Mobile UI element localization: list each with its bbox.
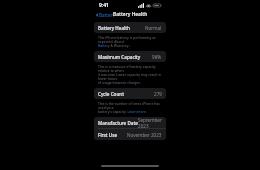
button[interactable]: Cycle Count: [94, 88, 166, 99]
staticText: November 2023: [127, 132, 162, 138]
staticText: 279: [154, 91, 162, 97]
staticText: September 2023: [138, 117, 162, 128]
staticText: This is the number of times iPhone has u…: [98, 101, 162, 114]
button[interactable]: Manufacture Date: [94, 117, 166, 128]
button[interactable]: Maximum Capacity: [94, 51, 166, 62]
staticText: Battery: [99, 12, 115, 17]
button[interactable]: Battery Health: [94, 22, 166, 33]
staticText: 9:41: [99, 2, 109, 9]
staticText: First Use: [98, 132, 118, 138]
button[interactable]: First Use: [94, 129, 166, 140]
staticText: This iPhone battery is performing as exp…: [98, 35, 162, 48]
staticText: Normal: [145, 25, 162, 31]
staticText: This is a measure of battery capacity re…: [98, 64, 162, 85]
staticText: Cycle Count: [98, 91, 124, 97]
staticText: Maximum Capacity: [98, 54, 141, 60]
staticText: 96%: [152, 54, 162, 60]
staticText: Battery Health: [98, 25, 130, 31]
button[interactable]: Back: [94, 10, 116, 19]
staticText: Battery Health: [113, 11, 148, 18]
staticText: Manufacture Date: [98, 120, 138, 126]
other: Back: [95, 13, 99, 17]
